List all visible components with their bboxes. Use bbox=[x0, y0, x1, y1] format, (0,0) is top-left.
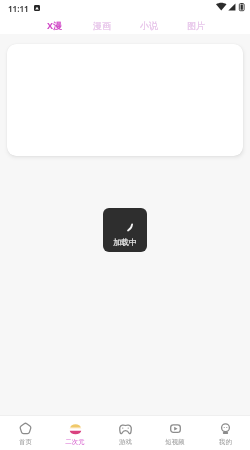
button[interactable]: 二次元 bbox=[50, 416, 100, 450]
staticText: 游戏 bbox=[119, 438, 132, 446]
staticText: 图片 bbox=[187, 20, 205, 31]
staticText: 我的 bbox=[219, 438, 232, 446]
button[interactable]: X漫 bbox=[31, 16, 78, 34]
staticText: 首页 bbox=[19, 438, 32, 446]
staticText: 11:11 bbox=[8, 3, 29, 14]
button[interactable]: 图片 bbox=[172, 16, 219, 34]
staticText: X漫 bbox=[47, 19, 63, 31]
button[interactable]: 游戏 bbox=[100, 416, 150, 450]
button[interactable]: 小说 bbox=[125, 16, 172, 34]
staticText: 漫画 bbox=[93, 20, 111, 31]
button[interactable]: 短视频 bbox=[150, 416, 200, 450]
staticText: 短视频 bbox=[165, 438, 185, 446]
button[interactable]: 首页 bbox=[0, 416, 50, 450]
staticText: 小说 bbox=[140, 20, 158, 31]
staticText: 加载中 bbox=[113, 237, 137, 247]
other: Status icons bbox=[216, 3, 242, 11]
button[interactable]: 我的 bbox=[200, 416, 250, 450]
button[interactable]: 漫画 bbox=[78, 16, 125, 34]
staticText: 二次元 bbox=[65, 438, 85, 446]
